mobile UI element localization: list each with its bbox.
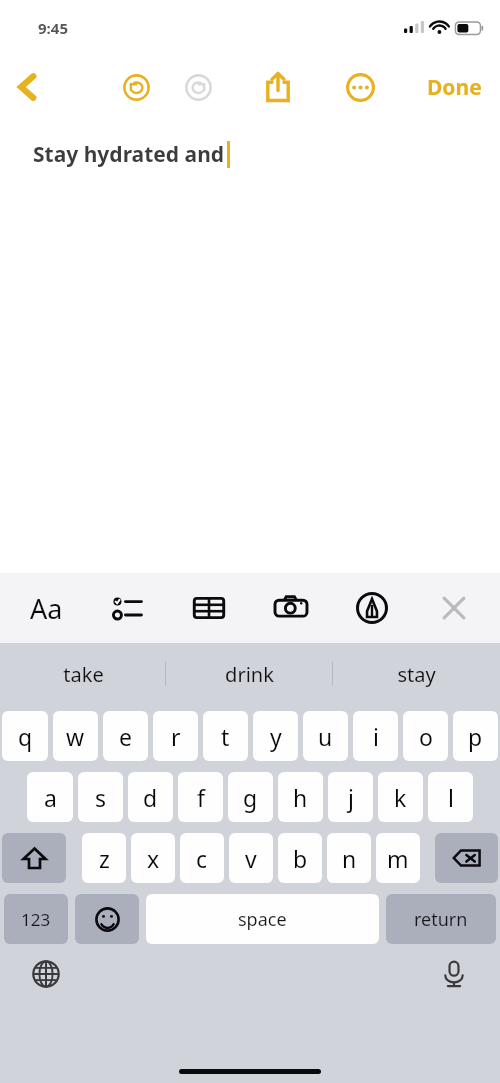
- button[interactable]: return: [386, 894, 496, 944]
- staticText: v: [245, 843, 257, 874]
- button[interactable]: Backspace: [435, 833, 498, 883]
- staticText: r: [171, 721, 181, 752]
- staticText: b: [293, 843, 308, 874]
- button[interactable]: Back: [0, 56, 56, 118]
- button[interactable]: l: [428, 772, 473, 822]
- staticText: drink: [225, 661, 274, 688]
- button[interactable]: Done: [415, 56, 494, 118]
- button[interactable]: b: [278, 833, 322, 883]
- button[interactable]: Undo: [113, 64, 159, 110]
- button[interactable]: Camera: [267, 584, 315, 632]
- button[interactable]: f: [178, 772, 223, 822]
- staticText: c: [196, 843, 208, 874]
- staticText: return: [414, 907, 468, 932]
- button[interactable]: g: [228, 772, 273, 822]
- button[interactable]: v: [229, 833, 273, 883]
- button[interactable]: Emoji: [75, 894, 139, 944]
- staticText: s: [95, 782, 107, 813]
- staticText: m: [387, 843, 409, 874]
- button[interactable]: Table: [185, 584, 233, 632]
- button[interactable]: t: [203, 711, 248, 761]
- button[interactable]: j: [328, 772, 373, 822]
- button[interactable]: x: [131, 833, 175, 883]
- button[interactable]: d: [128, 772, 173, 822]
- button[interactable]: Share: [255, 64, 301, 110]
- button[interactable]: i: [353, 711, 398, 761]
- staticText: f: [197, 782, 205, 813]
- staticText: g: [243, 782, 258, 813]
- button[interactable]: m: [376, 833, 420, 883]
- button[interactable]: e: [103, 711, 148, 761]
- staticText: x: [147, 843, 160, 874]
- staticText: u: [318, 721, 333, 752]
- staticText: z: [99, 843, 110, 874]
- staticText: space: [238, 907, 287, 932]
- button[interactable]: n: [327, 833, 371, 883]
- button[interactable]: Shift: [2, 833, 66, 883]
- staticText: d: [143, 782, 158, 813]
- staticText: Done: [427, 73, 482, 102]
- button[interactable]: u: [303, 711, 348, 761]
- button[interactable]: space: [146, 894, 379, 944]
- button[interactable]: y: [253, 711, 298, 761]
- staticText: a: [44, 782, 57, 813]
- button[interactable]: Close keyboard: [430, 584, 478, 632]
- staticText: Aa: [30, 590, 63, 627]
- staticText: q: [18, 721, 33, 752]
- button[interactable]: Text format: [22, 584, 70, 632]
- button[interactable]: stay: [333, 643, 500, 705]
- button[interactable]: h: [278, 772, 323, 822]
- button[interactable]: 123: [4, 894, 68, 944]
- button[interactable]: p: [453, 711, 498, 761]
- staticText: y: [270, 721, 282, 752]
- staticText: i: [373, 721, 379, 752]
- staticText: t: [221, 721, 230, 752]
- button[interactable]: r: [153, 711, 198, 761]
- button[interactable]: q: [2, 711, 48, 761]
- staticText: w: [66, 721, 85, 752]
- button[interactable]: Dictate: [430, 950, 478, 998]
- staticText: 9:45: [38, 18, 68, 38]
- staticText: n: [342, 843, 357, 874]
- button[interactable]: Change keyboard language: [22, 950, 70, 998]
- button[interactable]: z: [82, 833, 126, 883]
- button[interactable]: s: [78, 772, 123, 822]
- staticText: 123: [21, 908, 51, 931]
- button[interactable]: Redo: [175, 64, 221, 110]
- button[interactable]: c: [180, 833, 224, 883]
- button[interactable]: drink: [166, 643, 333, 705]
- staticText: h: [293, 782, 308, 813]
- button[interactable]: w: [53, 711, 98, 761]
- staticText: stay: [397, 661, 436, 688]
- staticText: take: [63, 661, 104, 688]
- button[interactable]: take: [0, 643, 166, 705]
- button[interactable]: Markup: [348, 584, 396, 632]
- button[interactable]: a: [27, 772, 73, 822]
- button[interactable]: Checklist: [104, 584, 152, 632]
- button[interactable]: k: [378, 772, 423, 822]
- staticText: j: [348, 782, 354, 813]
- button[interactable]: More options: [337, 64, 383, 110]
- staticText: e: [119, 721, 132, 752]
- staticText: k: [394, 782, 407, 813]
- button[interactable]: o: [403, 711, 448, 761]
- staticText: l: [448, 782, 454, 813]
- staticText: Stay hydrated and: [33, 140, 225, 169]
- staticText: p: [468, 721, 483, 752]
- staticText: o: [419, 721, 433, 752]
